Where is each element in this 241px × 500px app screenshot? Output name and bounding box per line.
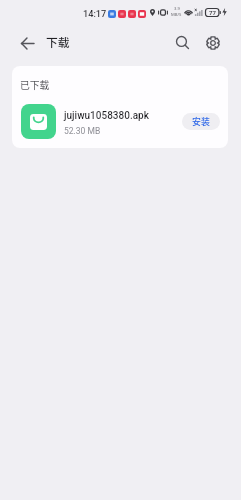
staticText: 已下载 — [20, 78, 50, 92]
button[interactable]: Settings — [200, 30, 226, 56]
button[interactable]: Search — [169, 29, 195, 55]
staticText: 安装 — [192, 115, 210, 128]
staticText: 77 — [209, 9, 216, 17]
staticText: 下载 — [46, 33, 70, 50]
button[interactable]: 安装 — [182, 113, 220, 130]
staticText: 52.30 MB — [64, 126, 101, 136]
staticText: 14:17 — [83, 8, 107, 19]
staticText: 3.9 — [174, 6, 180, 12]
staticText: MB/S — [171, 12, 182, 18]
button[interactable]: Back — [14, 30, 40, 56]
staticText: jujiwu1058380.apk — [64, 110, 149, 122]
